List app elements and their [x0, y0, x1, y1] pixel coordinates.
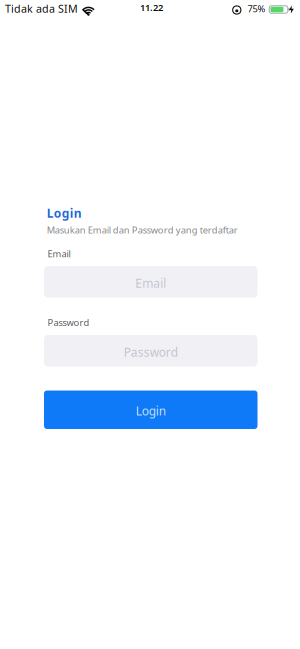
- staticText: 11.22: [140, 1, 163, 14]
- staticText: Password: [124, 344, 178, 360]
- staticText: Tidak ada SIM: [5, 1, 78, 16]
- staticText: Password: [47, 316, 89, 328]
- staticText: Login: [47, 205, 82, 221]
- staticText: Email: [135, 275, 166, 291]
- staticText: Email: [47, 247, 70, 260]
- staticText: 75%: [247, 2, 265, 15]
- staticText: Masukan Email dan Password yang terdafta…: [47, 224, 238, 236]
- button[interactable]: Password: [44, 335, 257, 366]
- button[interactable]: Login: [44, 390, 257, 429]
- button[interactable]: Email: [44, 266, 257, 297]
- staticText: Login: [136, 403, 166, 419]
